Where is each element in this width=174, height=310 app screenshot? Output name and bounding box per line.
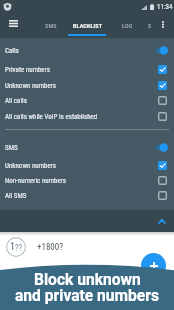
staticText: Calls bbox=[5, 47, 19, 55]
staticText: All SMS bbox=[5, 192, 27, 200]
staticText: SMS bbox=[45, 22, 57, 29]
button[interactable]: Unknown numbers bbox=[0, 78, 174, 93]
staticText: LOG bbox=[122, 22, 133, 29]
staticText: All calls bbox=[5, 97, 27, 105]
staticText: +1800? bbox=[37, 242, 64, 253]
button[interactable]: SMS bbox=[0, 140, 174, 155]
staticText: BLACKLIST bbox=[73, 22, 103, 29]
staticText: and private numbers bbox=[15, 287, 159, 305]
button[interactable]: Unknown numbers bbox=[0, 158, 174, 173]
button[interactable]: Expand list bbox=[154, 213, 170, 229]
staticText: Private numbers bbox=[5, 66, 50, 74]
button[interactable]: LOG bbox=[108, 13, 146, 38]
staticText: All calls while VoIP is established bbox=[5, 113, 98, 121]
staticText: Non-numeric numbers bbox=[5, 177, 66, 185]
staticText: S bbox=[148, 22, 152, 29]
button[interactable]: All calls bbox=[0, 93, 174, 108]
button[interactable]: S bbox=[131, 13, 169, 38]
button[interactable]: More options bbox=[156, 17, 172, 33]
button[interactable]: 1 bbox=[0, 232, 174, 262]
button[interactable]: BLACKLIST bbox=[69, 13, 107, 38]
button[interactable]: SMS bbox=[32, 13, 70, 38]
button[interactable]: Non-numeric numbers bbox=[0, 173, 174, 188]
staticText: ?? bbox=[15, 243, 23, 253]
staticText: Unknown numbers bbox=[5, 82, 57, 90]
staticText: Block unknown bbox=[34, 271, 141, 289]
button[interactable]: Calls bbox=[0, 43, 174, 58]
button[interactable]: Private numbers bbox=[0, 62, 174, 77]
button[interactable]: Add number bbox=[141, 253, 166, 278]
button[interactable]: All SMS bbox=[0, 188, 174, 203]
staticText: 11:34 bbox=[157, 3, 173, 11]
staticText: Unknown numbers bbox=[5, 162, 57, 170]
button[interactable]: All calls while VoIP is established bbox=[0, 109, 174, 124]
staticText: 1 bbox=[10, 241, 15, 253]
staticText: SMS bbox=[5, 144, 18, 152]
button[interactable]: Navigation menu bbox=[4, 14, 22, 32]
